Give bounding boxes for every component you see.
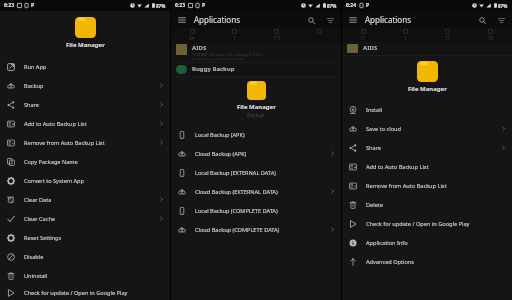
staticText: Add to Auto Backup List <box>366 163 506 171</box>
button[interactable]: Remove from Auto Backup List <box>0 133 170 152</box>
button[interactable]: Clear Cache <box>0 209 170 228</box>
button[interactable]: Menu <box>176 14 188 26</box>
staticText: Cloud Backup (EXTERNAL DATA) <box>195 188 330 196</box>
button[interactable]: Menu <box>347 14 359 26</box>
staticText: Disable <box>24 253 164 261</box>
button[interactable]: Uninstall <box>0 266 170 285</box>
button[interactable]: Remove from Auto Backup List <box>342 176 512 195</box>
staticText: Clear Cache <box>24 215 159 223</box>
staticText: 87% <box>327 3 337 9</box>
staticText: 34 <box>189 35 195 41</box>
button[interactable]: Local Backup (COMPLETE DATA) <box>171 201 341 220</box>
staticText: Cloud Backup (APK) <box>195 150 330 158</box>
button[interactable]: Search <box>476 14 488 26</box>
staticText: Save to cloud <box>366 125 501 133</box>
button[interactable]: Filter 2 <box>384 28 426 42</box>
staticText: Check for update / Open in Google Play <box>24 289 164 297</box>
button[interactable]: Filter 3 <box>255 28 298 42</box>
staticText: Convert to System App <box>24 177 164 185</box>
staticText: Remove from Auto Backup List <box>24 139 159 147</box>
button[interactable]: Check for update / Open in Google Play <box>342 214 512 233</box>
staticText: 6:23 <box>4 2 14 9</box>
staticText: Delete <box>366 201 506 209</box>
staticText: P <box>366 2 370 9</box>
button[interactable]: Ruggy Backup <box>171 63 341 76</box>
staticText: 6:24 <box>346 2 356 9</box>
staticText: 11 <box>445 35 451 41</box>
staticText: Run App <box>24 63 164 71</box>
button[interactable]: Local Backup (EXTERNAL DATA) <box>171 163 341 182</box>
staticText: Reset Settings <box>24 234 164 242</box>
button[interactable]: Install <box>342 100 512 119</box>
staticText: 16 <box>488 35 494 41</box>
button[interactable]: Cloud Backup (APK) <box>171 144 341 163</box>
button[interactable]: Reset Settings <box>0 228 170 247</box>
button[interactable]: Filter 4 <box>469 28 512 42</box>
button[interactable]: AIDS <box>342 42 512 55</box>
staticText: Share <box>366 144 501 152</box>
staticText: File Manager <box>237 103 276 111</box>
button[interactable]: Add to Auto Backup List <box>0 114 170 133</box>
staticText: Ruggy Backup <box>192 65 235 73</box>
staticText: Share <box>24 101 159 109</box>
button[interactable]: Local Backup (APK) <box>171 125 341 144</box>
button[interactable]: Convert to System App <box>0 171 170 190</box>
staticText: Advanced Options <box>366 258 506 266</box>
button[interactable]: Application Info <box>342 233 512 252</box>
button[interactable]: Backup <box>0 76 170 95</box>
staticText: Local Backup (EXTERNAL DATA) <box>195 169 335 177</box>
button[interactable]: AIDS <box>171 42 341 62</box>
button[interactable]: Filter 4 <box>298 28 341 42</box>
button[interactable]: Search <box>305 14 317 26</box>
staticText: AIDS <box>363 44 378 52</box>
staticText: 87% <box>156 3 166 9</box>
button[interactable]: Copy Package Name <box>0 152 170 171</box>
staticText: File Manager <box>66 41 105 49</box>
button[interactable]: Cloud Backup (COMPLETE DATA) <box>171 220 341 239</box>
staticText: 6:23 <box>175 2 185 9</box>
button[interactable]: Share <box>342 138 512 157</box>
staticText: Backup <box>24 82 159 90</box>
button[interactable]: Clear Data <box>0 190 170 209</box>
staticText: 1 <box>233 35 236 41</box>
staticText: P <box>202 2 206 9</box>
staticText: Clear Data <box>24 196 159 204</box>
staticText: P <box>31 2 35 9</box>
button[interactable]: Disable <box>0 247 170 266</box>
button[interactable]: Filter 3 <box>426 28 469 42</box>
staticText: Applications <box>194 14 240 25</box>
button[interactable]: Filter 1 <box>171 28 213 42</box>
staticText: Local Backup (COMPLETE DATA) <box>195 207 335 215</box>
button[interactable]: Cloud Backup (EXTERNAL DATA) <box>171 182 341 201</box>
staticText: File Manager <box>408 85 447 93</box>
button[interactable]: Delete <box>342 195 512 214</box>
staticText: Applications <box>365 14 411 25</box>
staticText: Copy Package Name <box>24 158 164 166</box>
staticText: 171 <box>273 35 281 41</box>
button[interactable]: Advanced Options <box>342 252 512 271</box>
staticText: 1 <box>404 35 407 41</box>
staticText: Remove from Auto Backup List <box>366 182 506 190</box>
staticText: Application Info <box>366 239 506 247</box>
button[interactable]: Share <box>0 95 170 114</box>
staticText: AIDS <box>192 44 207 52</box>
staticText: Uninstall <box>24 272 164 280</box>
staticText: Check for update / Open in Google Play <box>366 220 506 228</box>
button[interactable]: Filter 1 <box>342 28 384 42</box>
button[interactable]: Check for update / Open in Google Play <box>0 285 170 300</box>
staticText: Add to Auto Backup List <box>24 120 159 128</box>
staticText: 87% <box>498 3 508 9</box>
staticText: Package: com.test4000.aids <box>192 57 244 60</box>
staticText: Backup <box>247 112 265 119</box>
staticText: 11 <box>360 35 366 41</box>
button[interactable]: Add to Auto Backup List <box>342 157 512 176</box>
button[interactable]: Save to cloud <box>342 119 512 138</box>
button[interactable]: Sort <box>324 14 336 26</box>
button[interactable]: Sort <box>495 14 507 26</box>
button[interactable]: Filter 2 <box>213 28 255 42</box>
staticText: Install <box>366 106 506 114</box>
staticText: 1.08 MB Version 1.02 revision 1 (102) <box>192 52 262 57</box>
button[interactable]: Run App <box>0 57 170 76</box>
